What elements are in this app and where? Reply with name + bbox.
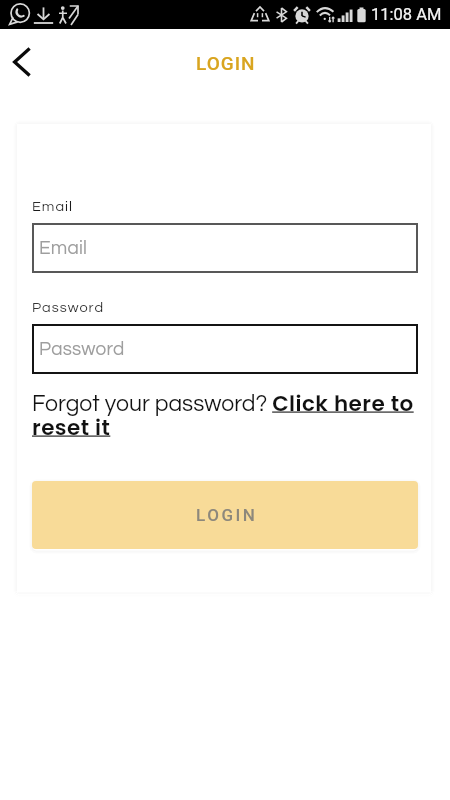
- button[interactable]: LOGIN: [32, 481, 418, 549]
- staticText: LOGIN: [196, 52, 256, 74]
- button[interactable]: Back: [1, 29, 41, 95]
- staticText: Password: [32, 300, 105, 315]
- button[interactable]: Password: [32, 324, 418, 374]
- staticText: Email: [39, 238, 88, 258]
- staticText: 11:08 AM: [371, 5, 442, 24]
- staticText: LOGIN: [196, 505, 258, 525]
- button[interactable]: Email: [32, 223, 418, 273]
- staticText: Password: [39, 339, 125, 359]
- staticText: Email: [32, 199, 73, 214]
- button[interactable]: Forgot your password? Click here to rese…: [32, 388, 419, 442]
